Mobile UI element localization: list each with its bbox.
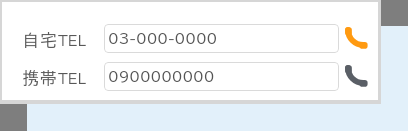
button[interactable]: 自宅TELに電話 [341, 24, 369, 52]
staticText: 携帯TEL [23, 70, 87, 86]
staticText: 0900000000 [108, 70, 215, 84]
button[interactable]: 携帯TELに電話 [341, 62, 369, 90]
staticText: 03-000-0000 [108, 32, 218, 46]
button[interactable]: 03-000-0000 [104, 24, 339, 53]
button[interactable]: 0900000000 [104, 62, 339, 91]
staticText: 自宅TEL [23, 32, 87, 48]
